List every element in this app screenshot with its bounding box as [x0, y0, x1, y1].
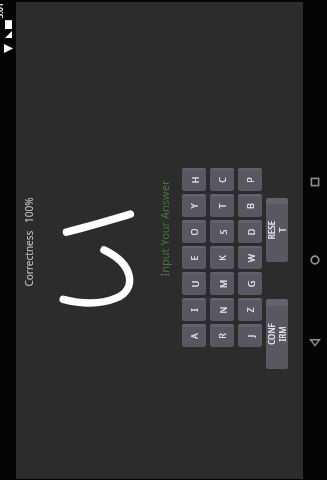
button[interactable]: K: [210, 246, 234, 269]
button[interactable]: B: [238, 194, 262, 217]
button[interactable]: T: [210, 194, 234, 217]
staticText: Y: [188, 203, 200, 209]
button[interactable]: CONFIRM: [266, 299, 288, 369]
staticText: N: [216, 306, 228, 313]
staticText: O: [188, 228, 200, 236]
staticText: E: [188, 255, 200, 261]
button[interactable]: C: [210, 168, 234, 191]
button[interactable]: O: [182, 220, 206, 243]
button[interactable]: E: [182, 246, 206, 269]
staticText: P: [244, 177, 256, 183]
button[interactable]: R: [210, 324, 234, 347]
staticText: A: [188, 333, 200, 339]
staticText: Correctness 100%: [22, 197, 36, 287]
button[interactable]: W: [238, 246, 262, 269]
staticText: J: [244, 334, 256, 337]
staticText: Z: [244, 307, 256, 313]
button[interactable]: RESET: [266, 198, 288, 262]
button[interactable]: Back: [309, 336, 321, 348]
button[interactable]: A: [182, 324, 206, 347]
staticText: B: [244, 203, 256, 209]
staticText: D: [244, 228, 256, 235]
staticText: K: [216, 255, 228, 261]
staticText: R: [216, 333, 228, 339]
button[interactable]: H: [182, 168, 206, 191]
button[interactable]: J: [238, 324, 262, 347]
button[interactable]: G: [238, 272, 262, 295]
staticText: I: [188, 308, 200, 312]
staticText: W: [244, 253, 256, 262]
staticText: Input Your Answer: [156, 180, 171, 276]
staticText: G: [244, 280, 256, 287]
button[interactable]: Home: [309, 254, 321, 266]
button[interactable]: P: [238, 168, 262, 191]
button[interactable]: M: [210, 272, 234, 295]
staticText: T: [216, 203, 228, 209]
button[interactable]: Z: [238, 298, 262, 321]
staticText: M: [216, 279, 228, 288]
button[interactable]: Recent apps: [309, 176, 321, 188]
staticText: RESET: [266, 219, 288, 241]
staticText: H: [188, 176, 200, 183]
staticText: U: [188, 280, 200, 287]
button[interactable]: Y: [182, 194, 206, 217]
button[interactable]: S: [210, 220, 234, 243]
button[interactable]: U: [182, 272, 206, 295]
staticText: S: [216, 229, 228, 234]
button[interactable]: D: [238, 220, 262, 243]
button[interactable]: I: [182, 298, 206, 321]
staticText: CONFIRM: [266, 323, 288, 345]
staticText: 5:01: [0, 2, 4, 18]
button[interactable]: N: [210, 298, 234, 321]
staticText: C: [216, 177, 228, 183]
